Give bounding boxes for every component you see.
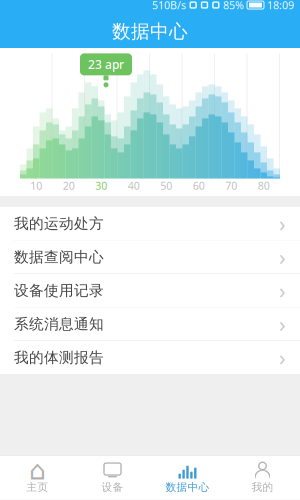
staticText: 主页	[26, 481, 48, 494]
staticText: 数据中心	[165, 481, 209, 494]
staticText: 我的运动处方	[14, 214, 104, 232]
staticText: 我的体测报告	[14, 348, 104, 366]
staticText: 40	[128, 178, 140, 193]
staticText: 数据中心	[112, 20, 188, 43]
staticText: 10	[30, 178, 42, 193]
staticText: 30	[95, 178, 107, 193]
staticText: 80	[258, 178, 270, 193]
staticText: ›	[279, 243, 286, 271]
staticText: 60	[193, 178, 205, 193]
staticText: ⌂	[29, 455, 46, 485]
staticText: 数据查阅中心	[14, 248, 104, 266]
button[interactable]: 设备	[75, 456, 150, 500]
staticText: ›	[279, 343, 286, 372]
staticText: 50	[160, 178, 172, 193]
staticText: 设备使用记录	[14, 281, 104, 299]
button[interactable]: ⌂	[0, 456, 75, 500]
staticText: 20	[63, 178, 75, 193]
staticText: 85%	[223, 0, 244, 12]
staticText: 70	[225, 178, 237, 193]
staticText: 系统消息通知	[14, 315, 104, 333]
button[interactable]: 我的运动处方	[0, 207, 300, 240]
staticText: ›	[279, 209, 286, 238]
staticText: ›	[279, 276, 286, 305]
button[interactable]: 设备使用记录	[0, 274, 300, 307]
staticText: 18:09	[267, 0, 294, 12]
button[interactable]: 我的体测报告	[0, 341, 300, 374]
staticText: 510B/s	[152, 0, 186, 12]
staticText: 设备	[101, 481, 123, 494]
button[interactable]: 系统消息通知	[0, 307, 300, 341]
button[interactable]: 数据中心	[150, 456, 225, 500]
button[interactable]: 我的	[225, 456, 300, 500]
staticText: ›	[279, 310, 286, 338]
button[interactable]: 数据查阅中心	[0, 240, 300, 274]
staticText: 我的	[251, 481, 273, 494]
staticText: 23 apr	[88, 56, 124, 72]
